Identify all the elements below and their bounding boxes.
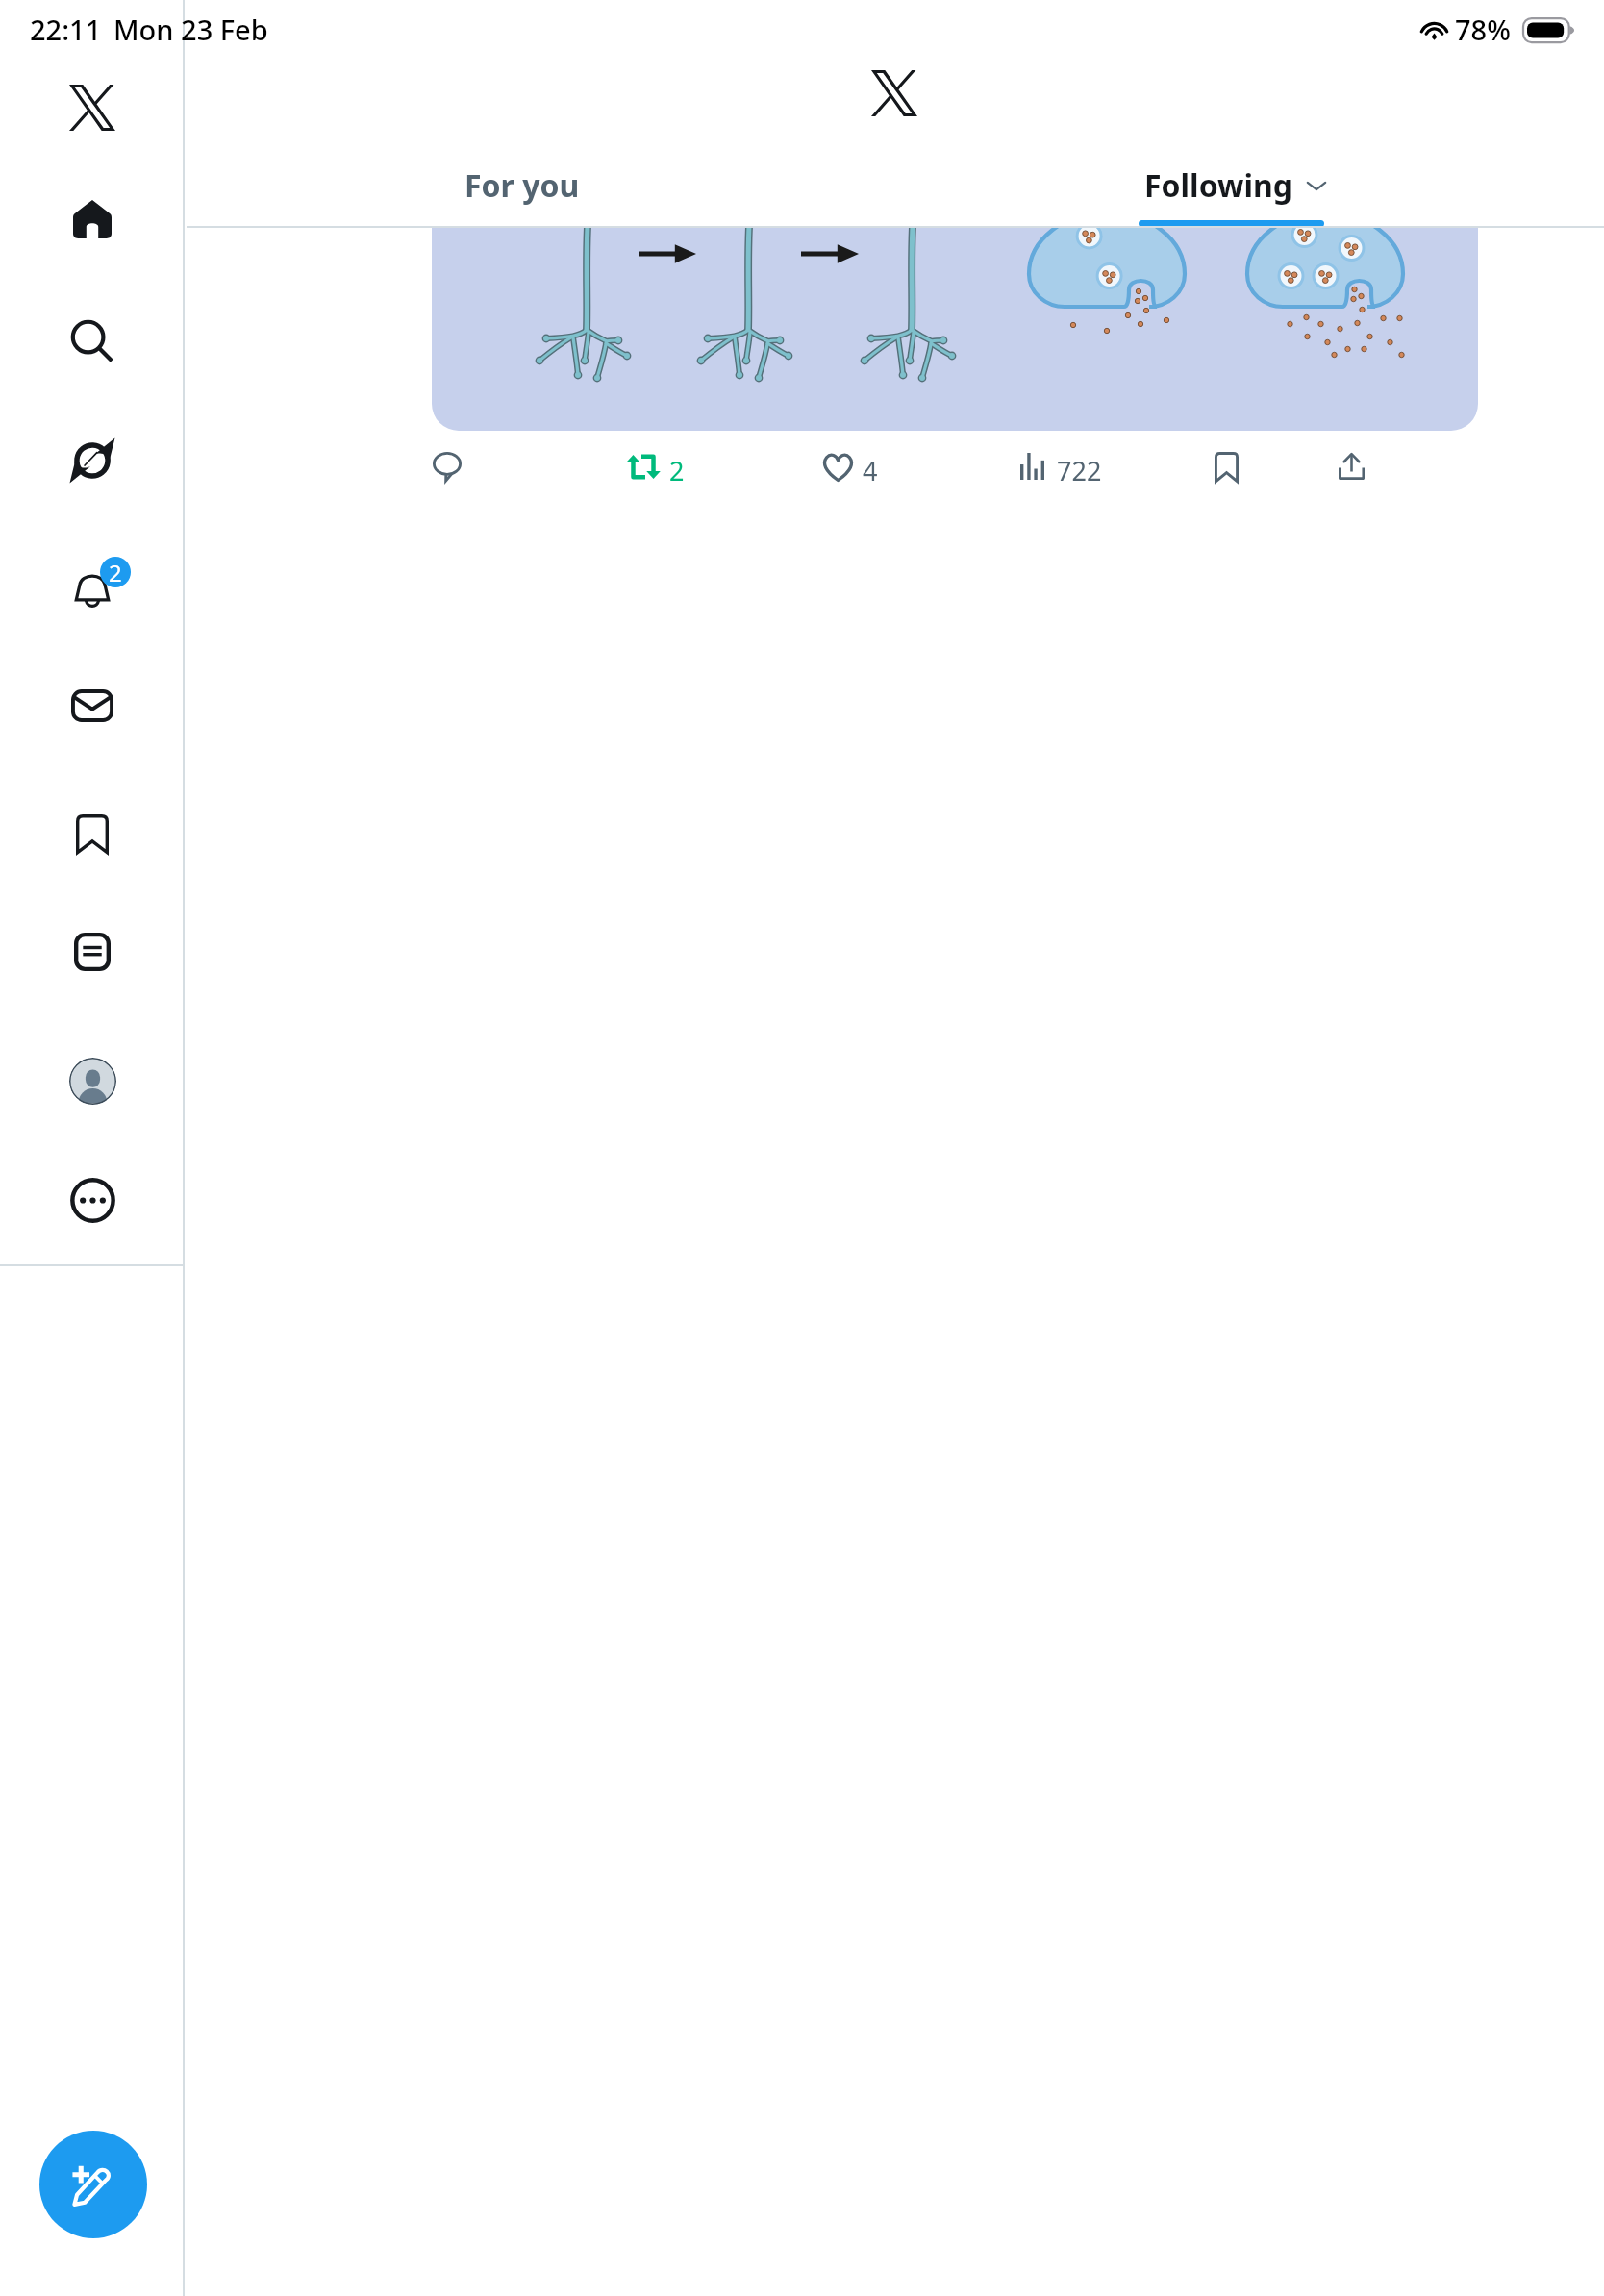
button[interactable]: Share (1319, 435, 1383, 498)
staticText: 22:11 (30, 11, 102, 48)
button[interactable]: Grok (33, 401, 152, 520)
button[interactable]: X (33, 63, 152, 152)
button[interactable]: Compose post (39, 2131, 147, 2238)
staticText: 722 (1057, 453, 1102, 488)
button[interactable]: Search (33, 282, 152, 401)
staticText: 2 (669, 453, 685, 488)
button[interactable]: Bookmarks (33, 774, 152, 893)
staticText: 2 (109, 557, 122, 587)
button[interactable]: Repost (612, 435, 675, 498)
button[interactable]: Messages (33, 646, 152, 765)
button[interactable]: Profile (33, 1021, 152, 1140)
staticText: 4 (863, 453, 878, 488)
button[interactable]: Like (806, 436, 869, 499)
staticText: Following (1144, 164, 1292, 207)
staticText: 78% (1455, 11, 1511, 48)
button[interactable]: Reply (415, 435, 479, 498)
button[interactable]: Bookmark (1194, 435, 1258, 498)
button[interactable]: Notifications (33, 528, 152, 647)
button[interactable]: Following (1065, 144, 1407, 226)
button[interactable]: Lists (33, 892, 152, 1011)
staticText: Mon 23 Feb (113, 11, 268, 48)
button[interactable]: Views (1000, 435, 1064, 498)
button[interactable]: For you (351, 144, 693, 226)
button[interactable]: Home (33, 160, 152, 279)
staticText: For you (464, 164, 580, 207)
button[interactable]: More settings (33, 1140, 152, 1260)
